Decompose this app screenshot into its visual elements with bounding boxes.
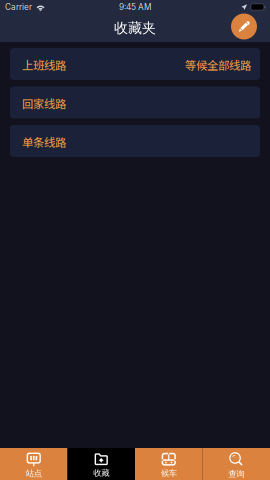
button[interactable]: 站点 [0,448,67,480]
button[interactable]: 查询 [202,448,270,480]
staticText: 单条线路 [22,133,66,150]
staticText: 站点 [26,468,42,479]
staticText: 9:45 AM [119,2,151,12]
staticText: 收藏 [93,468,109,478]
button[interactable]: 上班线路 [10,48,260,80]
button[interactable]: Edit [229,11,259,41]
button[interactable]: 回家线路 [10,86,260,118]
staticText: 等候全部线路 [185,56,251,73]
staticText: 回家线路 [22,95,66,111]
button[interactable]: 单条线路 [10,125,260,157]
staticText: 候车 [161,468,177,479]
button[interactable]: 候车 [135,448,202,480]
staticText: 查询 [228,469,244,479]
staticText: 收藏夹 [114,19,156,37]
button[interactable]: 收藏 [67,448,135,480]
staticText: Carrier [5,2,32,12]
staticText: 上班线路 [22,56,66,73]
